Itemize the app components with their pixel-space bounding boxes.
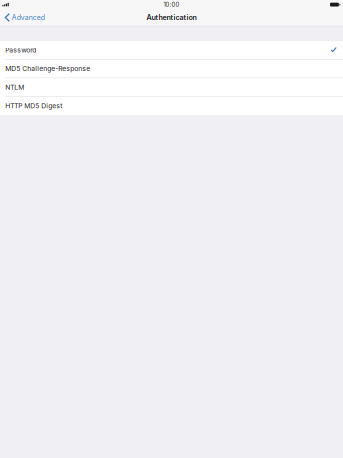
staticText: Authentication — [146, 13, 196, 22]
button[interactable]: Password — [0, 41, 343, 59]
staticText: Advanced — [12, 13, 45, 22]
button[interactable]: Advanced — [0, 10, 49, 25]
staticText: MD5 Challenge-Response — [5, 65, 90, 73]
staticText: 10:00 — [163, 1, 179, 8]
staticText: HTTP MD5 Digest — [5, 102, 62, 110]
staticText: NTLM — [5, 83, 24, 91]
staticText: Password — [5, 46, 36, 54]
button[interactable]: NTLM — [0, 78, 343, 96]
button[interactable]: MD5 Challenge-Response — [0, 60, 343, 78]
button[interactable]: HTTP MD5 Digest — [0, 97, 343, 115]
